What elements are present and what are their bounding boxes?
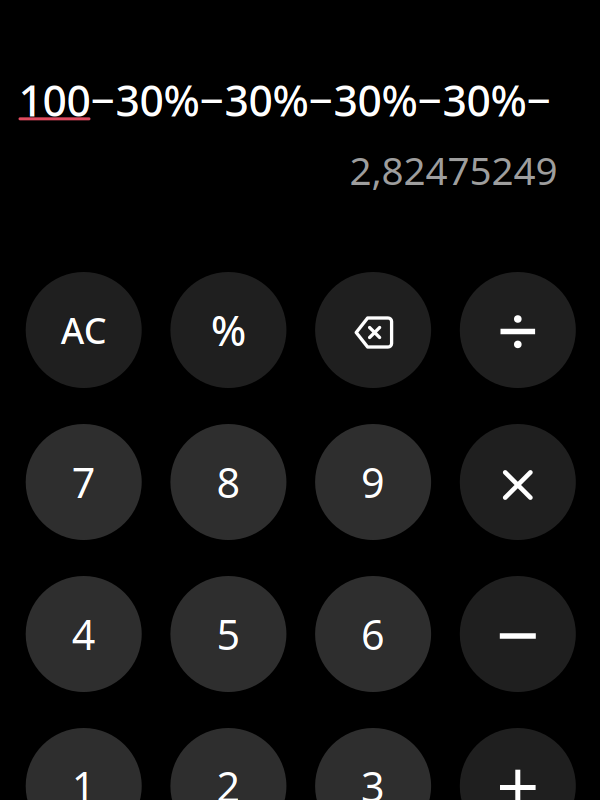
button[interactable]: Multiply (460, 424, 576, 540)
button[interactable]: % (170, 272, 286, 388)
button[interactable]: 3 (315, 728, 431, 800)
button[interactable]: 4 (26, 576, 142, 692)
staticText: 1 (72, 759, 96, 800)
staticText: 7 (72, 455, 96, 509)
button[interactable]: 2 (170, 728, 286, 800)
button[interactable]: Minus (460, 576, 576, 692)
button[interactable]: AC (26, 272, 142, 388)
staticText: 6 (361, 607, 385, 661)
button[interactable]: Plus (460, 728, 576, 800)
staticText: 2,82475249 (349, 144, 557, 196)
staticText: 5 (216, 607, 240, 661)
staticText: 3 (361, 759, 385, 800)
button[interactable]: 1 (26, 728, 142, 800)
staticText: 2 (216, 759, 240, 800)
button[interactable]: 6 (315, 576, 431, 692)
staticText: % (211, 303, 246, 357)
button[interactable]: 8 (170, 424, 286, 540)
button[interactable]: Delete (315, 272, 431, 388)
staticText: AC (61, 306, 107, 354)
staticText: 8 (216, 455, 240, 509)
staticText: −30%−30%−30%−30%− (90, 72, 551, 128)
staticText: 4 (72, 607, 96, 661)
button[interactable]: Divide (460, 272, 576, 388)
staticText: 100 (18, 72, 90, 128)
button[interactable]: 9 (315, 424, 431, 540)
staticText: 9 (361, 455, 385, 509)
button[interactable]: 7 (26, 424, 142, 540)
button[interactable]: 5 (170, 576, 286, 692)
